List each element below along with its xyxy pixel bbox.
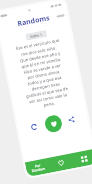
staticText: Ese es el versículo que me dice este niñ… <box>15 38 71 111</box>
button[interactable]: Share <box>66 114 77 126</box>
button[interactable]: Refresh <box>28 121 40 133</box>
button[interactable]: Video 1 <box>9 23 76 116</box>
staticText: Por Random <box>30 162 46 173</box>
staticText: Video 1 <box>29 32 43 39</box>
button[interactable]: Favorites <box>48 153 74 172</box>
button[interactable]: Like <box>43 114 63 134</box>
staticText: Randoms <box>16 13 51 29</box>
button[interactable]: Settings <box>71 149 92 168</box>
button[interactable]: Por Random <box>25 158 51 177</box>
button[interactable]: Video 1 <box>25 30 47 41</box>
